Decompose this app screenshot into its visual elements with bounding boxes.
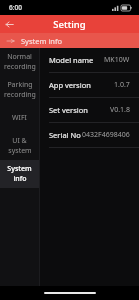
staticText: system xyxy=(8,146,32,156)
button[interactable]: Normal xyxy=(0,48,39,76)
staticText: 6:00 xyxy=(9,3,22,12)
staticText: MK10W xyxy=(104,55,130,65)
staticText: info xyxy=(13,174,27,184)
staticText: Parking xyxy=(7,80,33,90)
button[interactable]: WIFI xyxy=(0,104,39,132)
staticText: Normal xyxy=(7,52,32,62)
staticText: System xyxy=(7,164,32,174)
staticText: Serial No xyxy=(49,130,81,140)
staticText: Model name xyxy=(49,55,94,65)
button[interactable]: UI & xyxy=(0,132,39,160)
button[interactable]: Set version xyxy=(40,98,139,122)
staticText: System info xyxy=(21,36,63,46)
button[interactable]: System info xyxy=(0,33,139,48)
staticText: 0432F4698406 xyxy=(82,130,130,140)
staticText: recording xyxy=(4,90,36,100)
button[interactable]: Back xyxy=(0,15,18,33)
staticText: Set version xyxy=(49,105,88,115)
staticText: UI & xyxy=(12,136,27,146)
button[interactable]: Parking xyxy=(0,76,39,104)
staticText: V0.1.8 xyxy=(110,105,130,115)
button[interactable]: Serial No xyxy=(40,123,139,147)
staticText: 1.0.7 xyxy=(114,80,130,90)
staticText: recording xyxy=(4,62,36,72)
staticText: WIFI xyxy=(12,113,27,123)
staticText: App version xyxy=(49,80,91,90)
staticText: Setting xyxy=(53,18,86,31)
button[interactable]: App version xyxy=(40,73,139,97)
button[interactable]: System xyxy=(0,160,39,188)
button[interactable]: Model name xyxy=(40,48,139,72)
